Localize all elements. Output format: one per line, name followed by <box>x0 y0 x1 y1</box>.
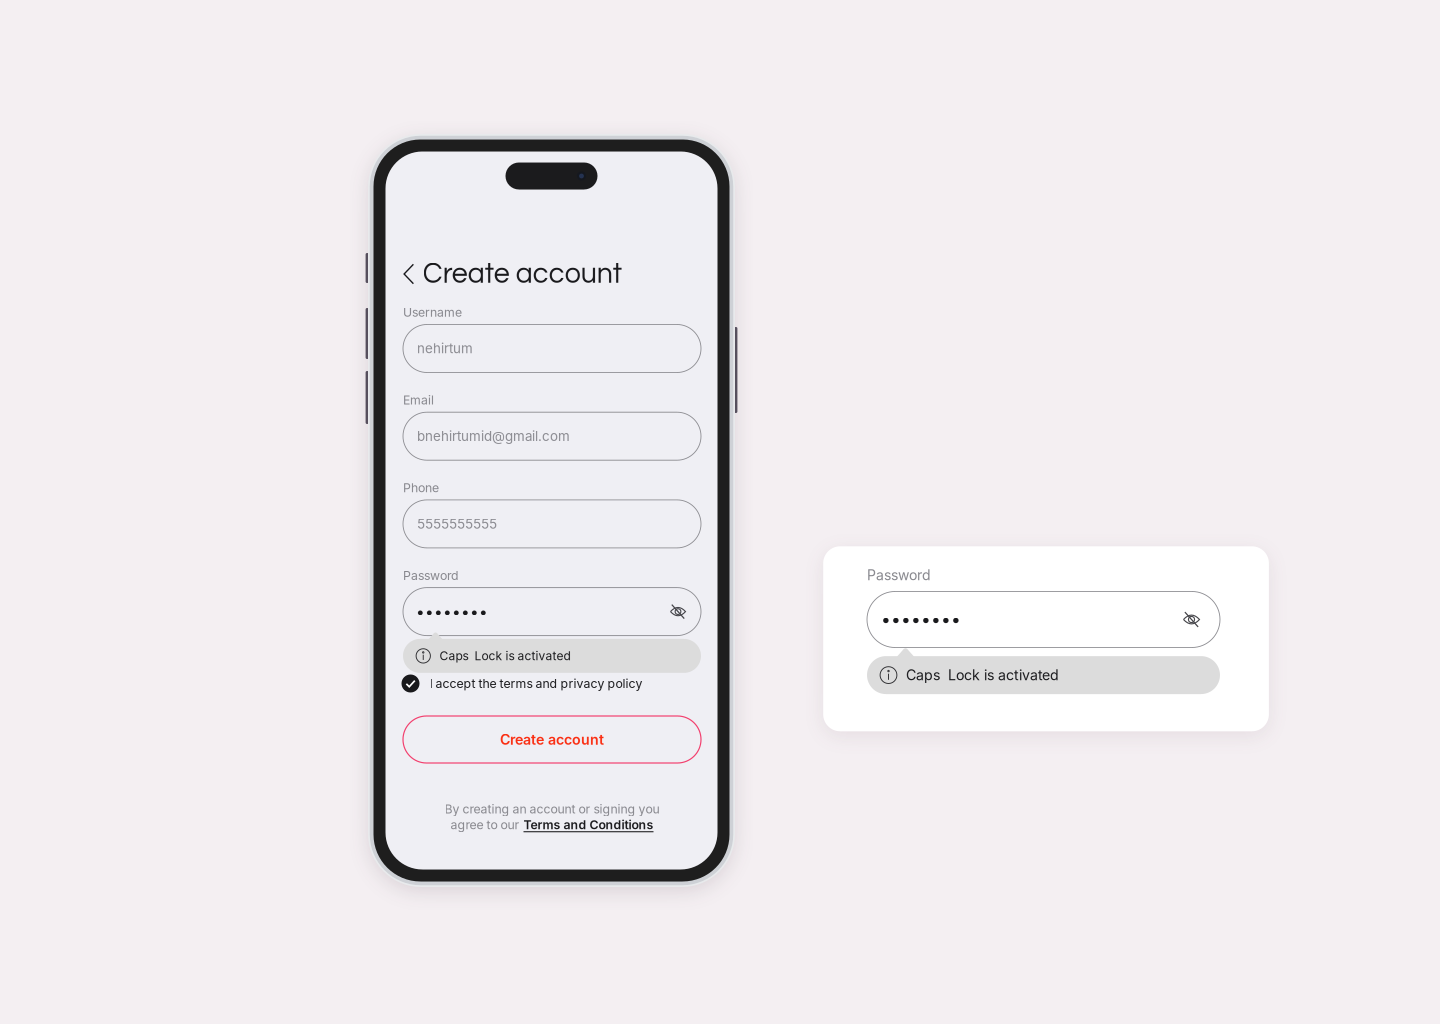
staticText: bnehirtumid@gmail.com <box>417 428 570 444</box>
staticText: Email <box>403 393 434 407</box>
staticText: By creating an account or signing you <box>444 801 659 816</box>
staticText: Caps Lock is activated <box>906 666 1059 684</box>
button[interactable]: nehirtum <box>403 324 701 372</box>
button[interactable]: 5555555555 <box>403 500 701 548</box>
staticText: I accept the terms and privacy policy <box>429 676 642 691</box>
button[interactable]: Show password <box>670 605 686 618</box>
staticText: Phone <box>403 480 439 495</box>
button[interactable]: Show password <box>1183 613 1200 626</box>
staticText: Terms and Conditions <box>523 817 653 832</box>
button[interactable]: Create account <box>403 716 701 763</box>
staticText: agree to our <box>450 817 519 832</box>
staticText: Password <box>403 568 459 583</box>
staticText: 5555555555 <box>417 516 497 532</box>
staticText: Create account <box>500 731 604 748</box>
button[interactable]: I accept the terms and privacy policy <box>401 672 699 694</box>
staticText: Password <box>867 567 931 584</box>
button[interactable]: Create account <box>403 259 622 289</box>
staticText: Create account <box>423 259 622 289</box>
staticText: Caps Lock is activated <box>439 649 570 663</box>
staticText: •••••••• <box>416 602 488 621</box>
staticText: nehirtum <box>417 340 473 356</box>
staticText: •••••••• <box>881 609 961 630</box>
staticText: Username <box>403 305 462 320</box>
button[interactable]: Terms and Conditions <box>523 817 653 832</box>
button[interactable]: bnehirtumid@gmail.com <box>403 412 701 460</box>
